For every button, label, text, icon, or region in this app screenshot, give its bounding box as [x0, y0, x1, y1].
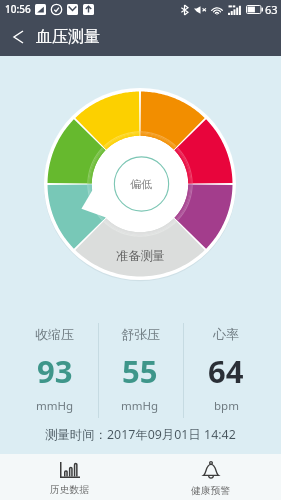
staticText: 93	[37, 350, 73, 392]
button[interactable]: 历史数据	[0, 454, 140, 500]
staticText: 64	[208, 350, 244, 392]
staticText: 心率	[213, 326, 239, 342]
staticText: 63	[265, 2, 278, 17]
staticText: 健康预警	[191, 485, 231, 497]
staticText: 历史数据	[50, 484, 90, 496]
staticText: 舒张压	[121, 326, 160, 342]
staticText: mmHg	[36, 398, 74, 414]
staticText: 收缩压	[35, 326, 74, 342]
staticText: 血压测量	[36, 27, 100, 47]
button[interactable]: Back	[4, 23, 32, 51]
button[interactable]: 健康预警	[140, 454, 281, 500]
staticText: 偏低	[130, 177, 152, 191]
staticText: bpm	[214, 398, 239, 414]
staticText: 测量时间：2017年09月01日 14:42	[45, 426, 236, 443]
staticText: 55	[122, 350, 158, 392]
staticText: 10:56	[5, 2, 31, 16]
staticText: 准备测量	[116, 248, 165, 263]
staticText: mmHg	[121, 398, 159, 414]
